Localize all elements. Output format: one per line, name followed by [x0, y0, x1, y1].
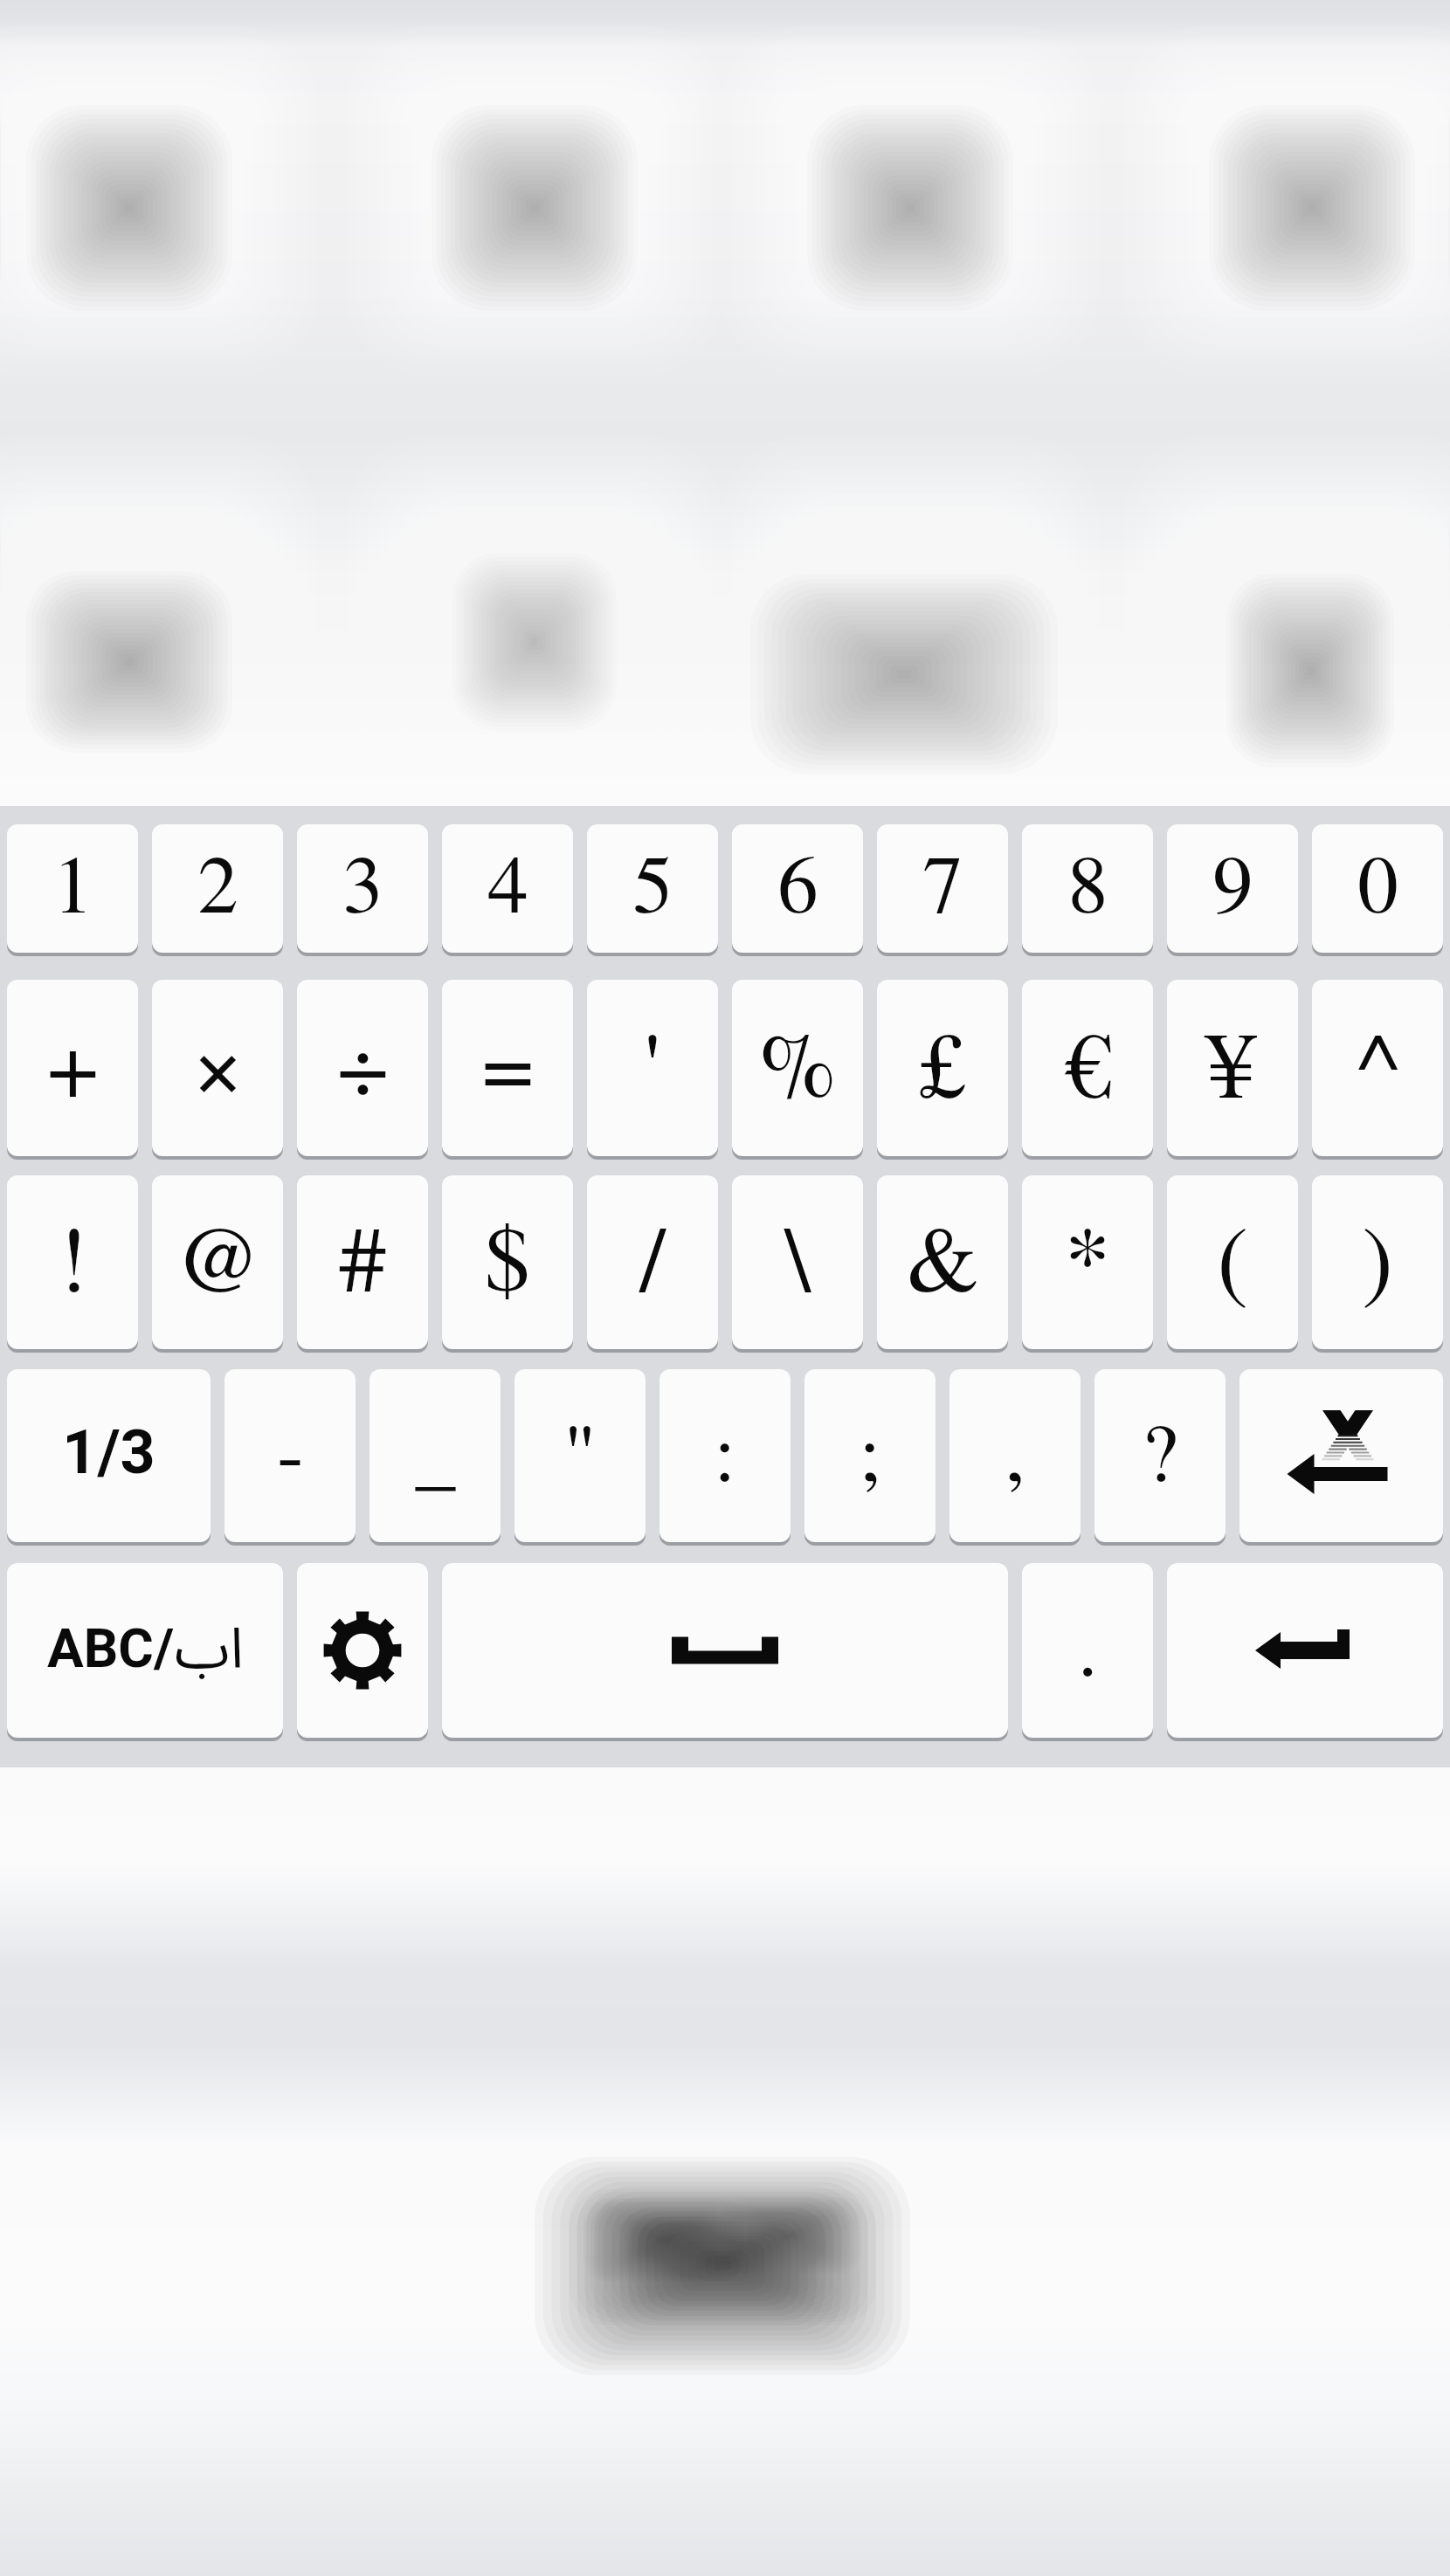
button[interactable]: ¥ — [1167, 980, 1298, 1156]
staticText: & — [906, 1193, 979, 1318]
staticText: ) — [1362, 1193, 1393, 1318]
button[interactable]: $ — [442, 1175, 573, 1349]
button[interactable]: Space — [442, 1563, 1008, 1738]
staticText: \ — [784, 1193, 811, 1318]
button[interactable]: ABC/ — [7, 1563, 283, 1738]
button[interactable]: ) — [1312, 1175, 1443, 1349]
button[interactable]: " — [514, 1369, 646, 1542]
staticText: ^ — [1356, 999, 1400, 1124]
button[interactable]: 1/3 — [7, 1369, 211, 1542]
staticText: 0 — [1357, 827, 1398, 935]
button[interactable]: 2 — [152, 824, 283, 953]
staticText: " — [563, 1395, 597, 1504]
staticText: £ — [919, 999, 966, 1124]
button[interactable]: 9 — [1167, 824, 1298, 953]
staticText: * — [1064, 1193, 1111, 1318]
staticText: = — [481, 999, 535, 1124]
button[interactable]: Enter — [1167, 1563, 1443, 1738]
staticText: 3 — [342, 827, 383, 935]
staticText: 1/3 — [62, 1416, 155, 1488]
button[interactable]: ÷ — [297, 980, 428, 1156]
button[interactable]: Keyboard settings — [297, 1563, 428, 1738]
button[interactable]: 6 — [732, 824, 863, 953]
staticText: ÷ — [336, 999, 390, 1124]
staticText: 7 — [922, 827, 963, 935]
staticText: # — [339, 1193, 386, 1318]
button[interactable]: 7 — [877, 824, 1008, 953]
staticText: 5 — [632, 827, 673, 935]
button[interactable]: @ — [152, 1175, 283, 1349]
staticText: % — [758, 999, 837, 1124]
button[interactable]: = — [442, 980, 573, 1156]
staticText: ; — [859, 1395, 881, 1504]
staticText: $ — [484, 1193, 531, 1318]
button[interactable]: . — [1022, 1563, 1153, 1738]
staticText: @ — [175, 1193, 261, 1318]
staticText: . — [1077, 1590, 1098, 1698]
button[interactable]: % — [732, 980, 863, 1156]
staticText: 8 — [1067, 827, 1108, 935]
staticText: 2 — [197, 827, 238, 935]
button[interactable]: ; — [804, 1369, 936, 1542]
button[interactable]: + — [7, 980, 138, 1156]
button[interactable]: € — [1022, 980, 1153, 1156]
button[interactable]: 4 — [442, 824, 573, 953]
button[interactable]: \ — [732, 1175, 863, 1349]
staticText: € — [1064, 999, 1111, 1124]
button[interactable]: _ — [369, 1369, 501, 1542]
staticText: ' — [644, 999, 661, 1124]
button[interactable]: ' — [587, 980, 718, 1156]
button[interactable]: 3 — [297, 824, 428, 953]
staticText: ¥ — [1209, 999, 1256, 1124]
button[interactable]: ? — [1094, 1369, 1226, 1542]
button[interactable]: ! — [7, 1175, 138, 1349]
button[interactable]: # — [297, 1175, 428, 1349]
staticText: - — [277, 1395, 304, 1504]
staticText: 9 — [1212, 827, 1253, 935]
button[interactable]: × — [152, 980, 283, 1156]
button[interactable]: 1 — [7, 824, 138, 953]
staticText: × — [191, 999, 245, 1124]
staticText: ( — [1217, 1193, 1248, 1318]
staticText: ABC/ — [47, 1616, 175, 1680]
button[interactable]: - — [224, 1369, 356, 1542]
button[interactable]: * — [1022, 1175, 1153, 1349]
staticText: ? — [1142, 1395, 1178, 1504]
button[interactable]: Backspace — [1239, 1369, 1443, 1542]
button[interactable]: & — [877, 1175, 1008, 1349]
button[interactable]: , — [949, 1369, 1081, 1542]
button[interactable]: / — [587, 1175, 718, 1349]
staticText: : — [714, 1395, 736, 1504]
staticText: + — [46, 999, 100, 1124]
staticText: , — [1005, 1395, 1025, 1504]
button[interactable]: 8 — [1022, 824, 1153, 953]
staticText: ! — [57, 1193, 88, 1318]
staticText: 6 — [777, 827, 818, 935]
staticText: _ — [415, 1395, 456, 1504]
button[interactable]: ^ — [1312, 980, 1443, 1156]
staticText: 1 — [52, 827, 93, 935]
staticText: اب — [175, 1591, 244, 1709]
button[interactable]: £ — [877, 980, 1008, 1156]
button[interactable]: ( — [1167, 1175, 1298, 1349]
button[interactable]: 5 — [587, 824, 718, 953]
staticText: / — [639, 1193, 666, 1318]
button[interactable]: : — [659, 1369, 791, 1542]
button[interactable]: 0 — [1312, 824, 1443, 953]
staticText: 4 — [487, 827, 528, 935]
